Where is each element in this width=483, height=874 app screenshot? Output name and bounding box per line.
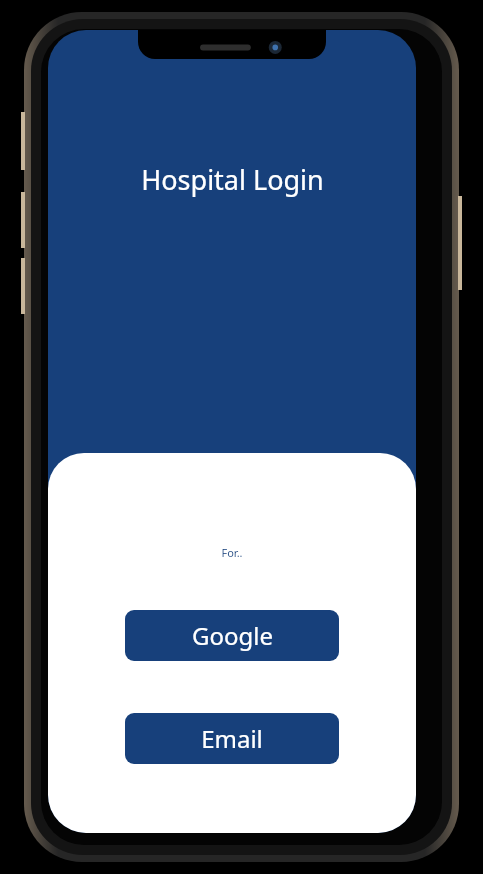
button[interactable]: Google <box>125 610 339 661</box>
button[interactable]: Email <box>125 713 339 764</box>
staticText: Google <box>192 619 273 652</box>
staticText: Email <box>201 722 263 755</box>
staticText: Hospital Login <box>141 161 324 198</box>
staticText: For.. <box>221 545 243 560</box>
other: Front camera and speaker <box>138 30 326 59</box>
